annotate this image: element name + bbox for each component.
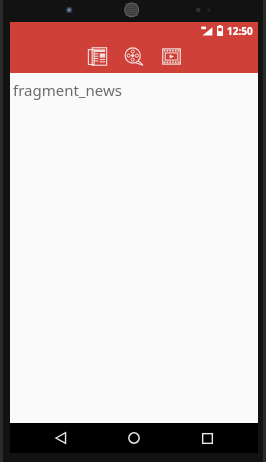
button[interactable]: Back: [39, 423, 83, 453]
button[interactable]: Home: [112, 423, 156, 453]
button[interactable]: Movies: [116, 39, 150, 73]
staticText: fragment_news: [13, 80, 122, 100]
button[interactable]: Recent apps: [185, 423, 229, 453]
button[interactable]: News: [80, 39, 114, 73]
button[interactable]: Videos: [154, 39, 188, 73]
staticText: 12:50: [227, 24, 253, 38]
